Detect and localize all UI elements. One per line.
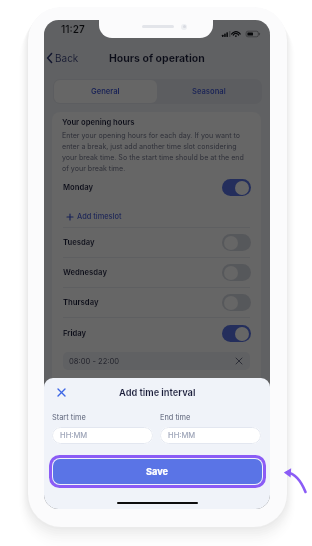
staticText: Wednesday	[63, 268, 107, 277]
staticText: HH:MM	[60, 431, 88, 440]
button[interactable]: HH:MM	[160, 427, 261, 444]
staticText: End time	[160, 413, 191, 422]
button[interactable]: Add timeslot	[63, 208, 126, 225]
staticText: Back	[55, 52, 79, 64]
button[interactable]: Enabled	[222, 179, 251, 196]
button[interactable]: Monday	[52, 176, 261, 198]
button[interactable]: Back	[45, 48, 81, 68]
button[interactable]: Disabled	[222, 234, 251, 251]
button[interactable]: Friday	[52, 322, 261, 344]
staticText: HH:MM	[168, 431, 196, 440]
staticText: Add timeslot	[77, 212, 122, 221]
button[interactable]: Wednesday	[52, 261, 261, 283]
staticText: Tuesday	[63, 238, 95, 247]
button[interactable]: Disabled	[222, 264, 251, 281]
button[interactable]: 08:00 - 22:00	[63, 352, 250, 370]
staticText: 08:00 - 22:00	[69, 357, 120, 366]
staticText: Start time	[52, 413, 86, 422]
button[interactable]: HH:MM	[52, 427, 153, 444]
staticText: Monday	[63, 183, 94, 192]
button[interactable]: Close	[52, 383, 70, 401]
staticText: General	[91, 87, 120, 96]
button[interactable]: General	[54, 80, 157, 103]
button[interactable]: Tuesday	[52, 231, 261, 253]
staticText: Your opening hours	[62, 118, 135, 127]
staticText: Seasonal	[192, 87, 226, 96]
staticText: Enter your opening hours for each day. I…	[62, 131, 261, 172]
staticText: Save	[146, 466, 169, 477]
button[interactable]: Disabled	[222, 294, 251, 311]
staticText: Hours of operation	[109, 52, 205, 65]
staticText: 11:27	[61, 23, 85, 35]
button[interactable]: Seasonal	[157, 80, 261, 103]
staticText: Thursday	[63, 298, 99, 307]
button[interactable]: Save	[53, 459, 262, 484]
button[interactable]: Enabled	[222, 325, 251, 342]
staticText: Friday	[63, 329, 87, 338]
staticText: Add time interval	[119, 387, 196, 398]
button[interactable]: Thursday	[52, 291, 261, 313]
